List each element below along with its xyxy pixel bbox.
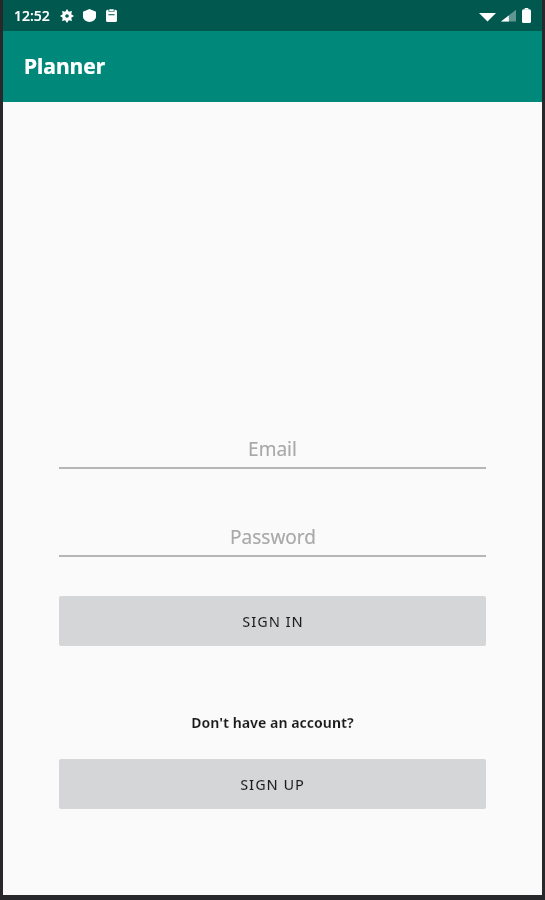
staticText: SIGN IN (242, 611, 304, 631)
staticText: Password (230, 524, 316, 550)
staticText: 12:52 (14, 6, 50, 25)
staticText: SIGN UP (240, 774, 305, 794)
staticText: Planner (24, 52, 106, 81)
staticText: Email (248, 436, 297, 462)
staticText: Don't have an account? (3, 713, 542, 732)
button[interactable]: SIGN IN (59, 596, 486, 646)
button[interactable]: SIGN UP (59, 759, 486, 809)
button[interactable]: Password (59, 520, 486, 557)
button[interactable]: Email (59, 432, 486, 469)
